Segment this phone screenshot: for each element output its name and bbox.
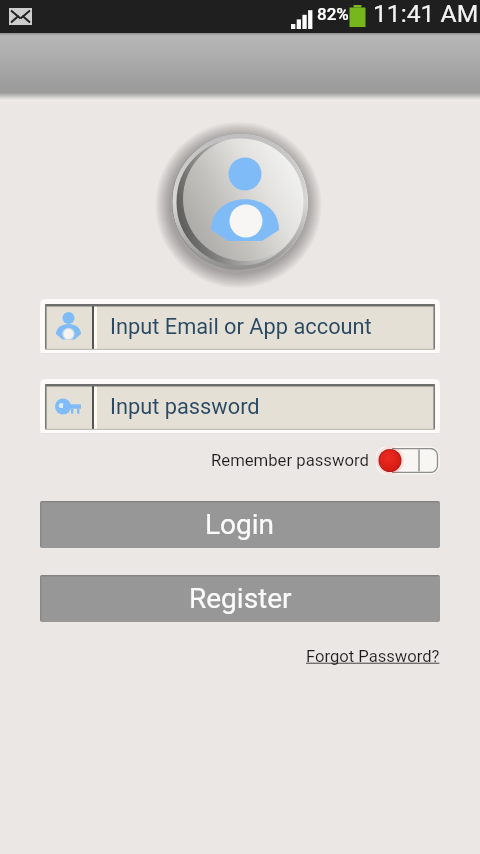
staticText: Login <box>205 508 275 541</box>
staticText: Input password <box>110 394 260 420</box>
staticText: Register <box>189 582 292 615</box>
button[interactable]: Forgot Password? <box>306 647 440 666</box>
button[interactable]: Remember password toggle <box>376 448 440 473</box>
button[interactable]: Login <box>40 501 440 548</box>
staticText: 82% <box>317 4 349 24</box>
button[interactable]: Input password <box>40 379 440 435</box>
staticText: Input Email or App account <box>110 314 372 340</box>
staticText: 11:41 AM <box>373 0 479 28</box>
button[interactable]: Register <box>40 575 440 622</box>
button[interactable]: Input Email or App account <box>40 299 440 355</box>
staticText: Remember password <box>211 451 369 471</box>
